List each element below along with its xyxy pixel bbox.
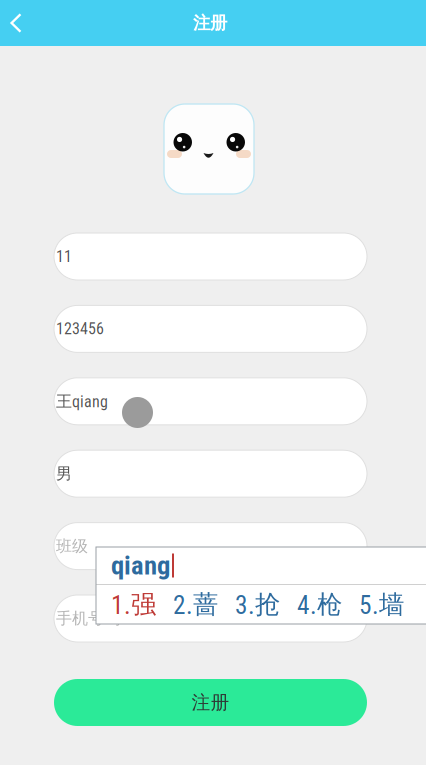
- button[interactable]: 11: [54, 233, 367, 280]
- staticText: 男: [56, 464, 72, 484]
- button[interactable]: 手机号码: [54, 595, 367, 642]
- staticText: 注册: [191, 691, 229, 714]
- staticText: 1.强: [111, 588, 156, 620]
- staticText: 5.墙: [359, 588, 404, 620]
- staticText: 4.枪: [297, 588, 342, 620]
- staticText: 123456: [56, 319, 104, 338]
- button[interactable]: Back: [0, 0, 32, 46]
- staticText: 注册: [193, 12, 227, 34]
- staticText: qiang: [111, 550, 170, 581]
- staticText: 11: [56, 247, 72, 266]
- button[interactable]: 5.墙: [359, 585, 404, 623]
- button[interactable]: 王qiang: [54, 378, 367, 425]
- button[interactable]: Choose avatar: [164, 104, 254, 194]
- button[interactable]: 123456: [54, 305, 367, 352]
- button[interactable]: 1.强: [111, 585, 156, 623]
- button[interactable]: 男: [54, 450, 367, 497]
- button[interactable]: 注册: [54, 679, 367, 726]
- button[interactable]: 2.蔷: [173, 585, 218, 623]
- staticText: 3.抢: [235, 588, 280, 620]
- staticText: 王qiang: [56, 391, 108, 411]
- button[interactable]: 班级: [54, 523, 367, 570]
- staticText: 手机号码: [56, 608, 120, 629]
- button[interactable]: 3.抢: [235, 585, 280, 623]
- button[interactable]: 4.枪: [297, 585, 342, 623]
- staticText: 2.蔷: [173, 588, 218, 620]
- staticText: 班级: [56, 536, 88, 556]
